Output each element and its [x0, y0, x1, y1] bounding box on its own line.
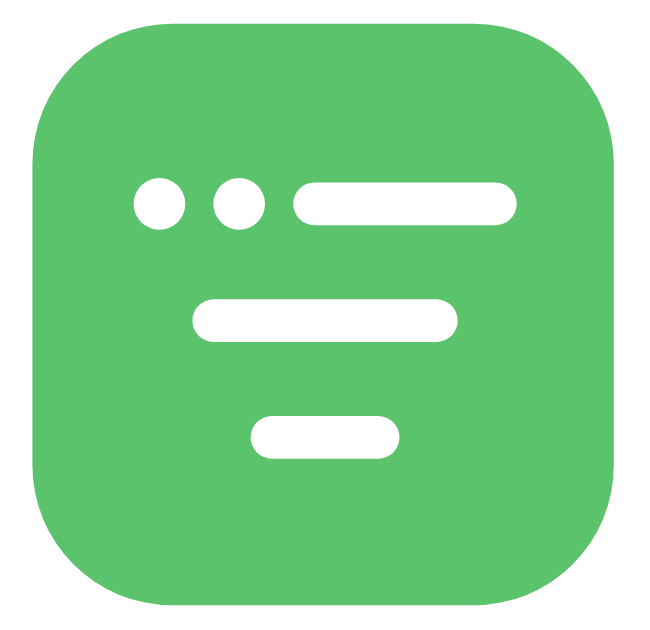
button[interactable]: App logo — [0, 0, 650, 630]
